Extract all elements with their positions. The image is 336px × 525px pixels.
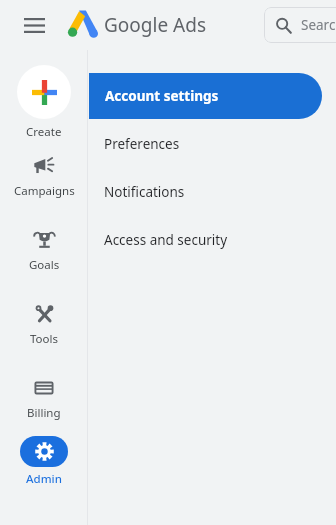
button[interactable]: Preferences bbox=[88, 125, 336, 163]
staticText: Notifications bbox=[104, 183, 185, 201]
button[interactable]: Admin bbox=[0, 436, 88, 487]
button[interactable]: Notifications bbox=[88, 173, 336, 211]
button[interactable]: Goals bbox=[0, 214, 88, 288]
staticText: Billing bbox=[27, 405, 61, 421]
staticText: Create bbox=[26, 124, 62, 140]
button[interactable]: Menu bbox=[14, 5, 54, 45]
staticText: Admin bbox=[26, 471, 62, 487]
button[interactable]: Billing bbox=[0, 362, 88, 436]
staticText: Goals bbox=[29, 257, 60, 273]
button[interactable]: Account settings bbox=[89, 73, 322, 119]
staticText: Search bbox=[301, 16, 336, 34]
staticText: Campaigns bbox=[14, 183, 75, 199]
button[interactable]: Campaigns bbox=[0, 140, 88, 214]
staticText: Tools bbox=[30, 331, 58, 347]
staticText: Account settings bbox=[105, 87, 219, 105]
button[interactable]: Search bbox=[264, 7, 336, 43]
staticText: Access and security bbox=[104, 231, 228, 249]
staticText: Preferences bbox=[104, 135, 180, 153]
button[interactable]: Access and security bbox=[88, 221, 336, 259]
button[interactable]: Create bbox=[0, 65, 88, 140]
button[interactable]: Tools bbox=[0, 288, 88, 362]
staticText: Google Ads bbox=[104, 12, 206, 38]
